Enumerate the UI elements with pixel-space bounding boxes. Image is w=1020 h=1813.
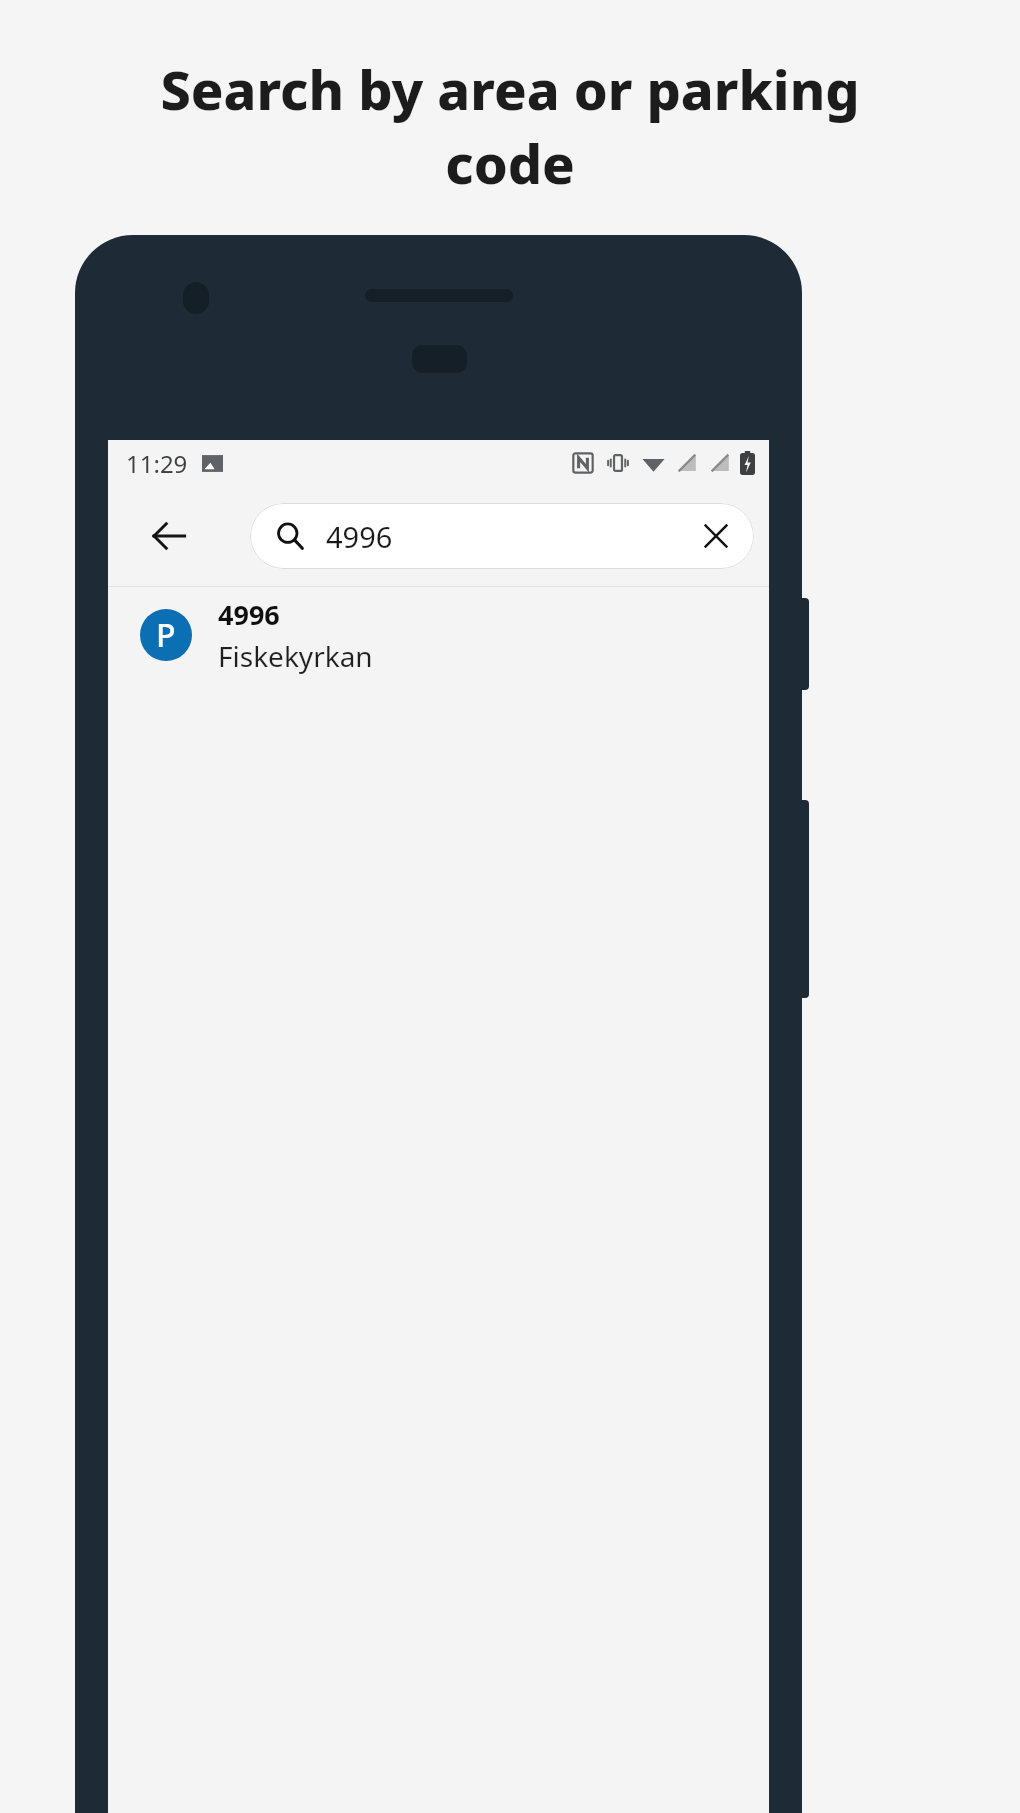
staticText: 4996 <box>218 596 280 633</box>
staticText: Fiskekyrkan <box>218 637 373 675</box>
button[interactable]: Back <box>138 505 200 567</box>
button[interactable]: 4996 <box>250 503 754 569</box>
staticText: Search by area or parking code <box>40 52 980 200</box>
button[interactable]: Clear search <box>688 508 744 564</box>
button[interactable]: P <box>108 587 769 683</box>
staticText: 11:29 <box>126 447 188 480</box>
staticText: P <box>156 613 176 657</box>
staticText: 4996 <box>326 517 393 556</box>
